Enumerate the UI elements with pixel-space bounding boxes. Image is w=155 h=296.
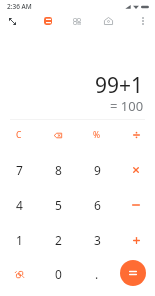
button[interactable]: Home bbox=[97, 9, 119, 33]
button[interactable]: Equals bbox=[120, 260, 146, 286]
button[interactable]: 8 bbox=[39, 153, 77, 187]
button[interactable]: 2 bbox=[39, 223, 77, 257]
button[interactable]: Unit converter bbox=[67, 10, 87, 32]
button[interactable]: 1 bbox=[0, 223, 38, 257]
button[interactable]: Scientific mode bbox=[1, 9, 23, 33]
staticText: 99+1 bbox=[95, 71, 144, 100]
button[interactable]: 5 bbox=[39, 188, 77, 222]
staticText: 7 bbox=[16, 162, 23, 178]
staticText: 4 bbox=[16, 197, 23, 213]
staticText: 9 bbox=[94, 162, 101, 178]
button[interactable]: 9 bbox=[78, 153, 116, 187]
staticText: 6 bbox=[94, 197, 101, 213]
button[interactable]: 4 bbox=[0, 188, 38, 222]
button[interactable]: % bbox=[78, 118, 116, 152]
button[interactable]: 3 bbox=[78, 223, 116, 257]
button[interactable]: 7 bbox=[0, 153, 38, 187]
button[interactable]: Multiply bbox=[117, 153, 155, 187]
button[interactable]: Calculator bbox=[38, 10, 58, 32]
button[interactable]: More options bbox=[133, 9, 153, 33]
button[interactable]: Minus bbox=[117, 188, 155, 222]
staticText: 2:36 AM bbox=[7, 2, 32, 11]
button[interactable]: 6 bbox=[78, 188, 116, 222]
staticText: . bbox=[95, 266, 99, 282]
button[interactable]: Backspace bbox=[39, 118, 77, 152]
staticText: 2 bbox=[55, 232, 62, 248]
staticText: 5 bbox=[55, 197, 62, 213]
button[interactable]: Divide bbox=[117, 118, 155, 152]
button[interactable]: C bbox=[0, 118, 38, 152]
staticText: 1 bbox=[16, 232, 23, 248]
button[interactable]: Unit converter bbox=[0, 257, 38, 291]
staticText: C bbox=[16, 129, 22, 141]
button[interactable]: . bbox=[78, 257, 116, 291]
staticText: % bbox=[93, 129, 101, 141]
staticText: = 100 bbox=[110, 97, 144, 115]
staticText: 3 bbox=[94, 232, 101, 248]
staticText: 0 bbox=[55, 266, 62, 282]
button[interactable]: 0 bbox=[39, 257, 77, 291]
staticText: 8 bbox=[55, 162, 62, 178]
button[interactable]: Plus bbox=[117, 223, 155, 257]
